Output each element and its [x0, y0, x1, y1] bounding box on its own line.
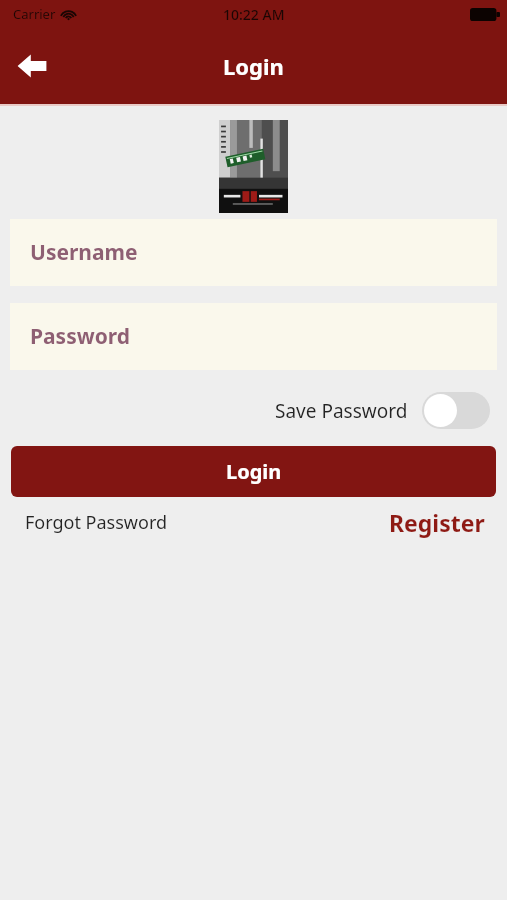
button[interactable]: Username: [10, 219, 497, 286]
button[interactable]: Forgot Password: [25, 510, 168, 535]
button[interactable]: Save Password: [275, 392, 490, 429]
staticText: Password: [30, 322, 131, 351]
staticText: Login: [223, 51, 284, 81]
staticText: Save Password: [275, 398, 408, 424]
staticText: Forgot Password: [25, 510, 168, 535]
staticText: Register: [389, 507, 485, 538]
staticText: Username: [30, 238, 138, 267]
staticText: Login: [226, 458, 282, 485]
button[interactable]: Login: [11, 446, 496, 497]
staticText: 10:22 AM: [223, 5, 285, 24]
button[interactable]: Register: [389, 507, 485, 538]
button[interactable]: Back: [6, 40, 58, 92]
button[interactable]: Password: [10, 303, 497, 370]
staticText: Carrier: [13, 5, 56, 23]
